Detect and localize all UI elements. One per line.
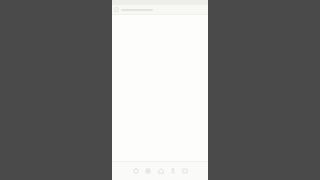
button[interactable]: Search <box>114 7 119 12</box>
button[interactable]: Search <box>112 5 208 14</box>
button[interactable]: Account <box>167 162 178 180</box>
button[interactable]: Categories <box>142 162 153 180</box>
button[interactable]: Shop <box>130 162 141 180</box>
button[interactable]: More <box>179 162 190 180</box>
button[interactable]: Home <box>155 162 166 180</box>
